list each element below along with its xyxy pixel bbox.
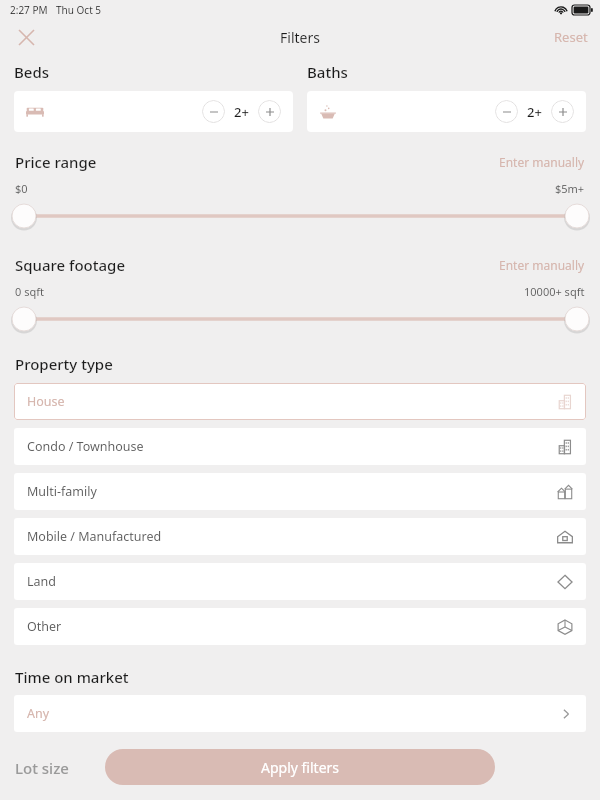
staticText: Baths [307,62,348,82]
staticText: Reset [554,28,588,46]
button[interactable]: Increase Beds [258,100,281,123]
staticText: Time on market [15,667,129,687]
button[interactable]: Decrease Beds [202,100,225,123]
staticText: Property type [15,354,113,374]
button[interactable]: House [14,383,586,420]
staticText: Square footage [15,255,126,275]
button[interactable]: Multi-family [14,473,586,510]
button[interactable]: Any [14,695,586,732]
staticText: 0 sqft [15,284,44,299]
button[interactable]: Other [14,608,586,645]
staticText: 2+ [527,103,542,121]
staticText: 2+ [234,103,249,121]
staticText: Filters [280,28,320,47]
button[interactable]: Enter manually [499,154,585,170]
staticText: 10000+ sqft [524,284,585,299]
staticText: Any [27,705,50,722]
button[interactable]: Land [14,563,586,600]
button[interactable]: Reset [554,28,588,46]
staticText: Mobile / Manufactured [27,528,162,545]
button[interactable]: Enter manually [499,257,585,273]
staticText: Condo / Townhouse [27,438,144,455]
button[interactable]: Range slider [0,203,600,229]
staticText: Other [27,618,62,635]
staticText: Beds [14,62,50,82]
staticText: Apply filters [261,758,340,777]
staticText: $5m+ [555,181,585,196]
button[interactable]: Apply filters [105,749,495,785]
staticText: Lot size [15,758,69,778]
button[interactable]: Close [12,23,40,51]
button[interactable]: Condo / Townhouse [14,428,586,465]
staticText: Enter manually [499,154,585,170]
staticText: Thu Oct 5 [56,3,102,17]
staticText: Multi-family [27,483,97,500]
staticText: $0 [15,181,28,196]
button[interactable]: Increase Baths [551,100,574,123]
button[interactable]: Decrease Baths [495,100,518,123]
staticText: Enter manually [499,257,585,273]
staticText: Price range [15,152,97,172]
button[interactable]: Range slider [0,306,600,332]
staticText: Land [27,573,56,590]
staticText: 2:27 PM [10,3,48,17]
staticText: House [27,393,65,410]
button[interactable]: Mobile / Manufactured [14,518,586,555]
